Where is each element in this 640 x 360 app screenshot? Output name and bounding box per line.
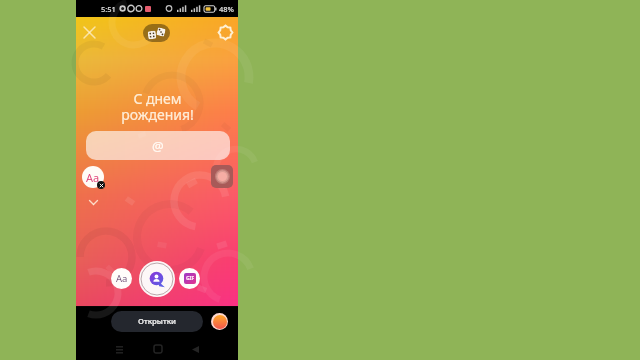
staticText: 5:51 (101, 4, 116, 14)
button[interactable]: Открытки (111, 311, 203, 332)
button[interactable]: Stickers (139, 261, 175, 297)
button[interactable]: Close (84, 27, 95, 38)
button[interactable]: Photo (211, 165, 233, 188)
button[interactable]: @ (86, 131, 230, 160)
button[interactable]: Shuffle template (143, 24, 170, 42)
button[interactable]: GIF (179, 268, 200, 289)
button[interactable]: Remove text (97, 181, 105, 189)
staticText: 48% (219, 4, 234, 14)
button[interactable]: Recents (111, 341, 127, 357)
staticText: GIF (186, 275, 195, 282)
staticText: Открытки (138, 316, 176, 327)
button[interactable]: Back (187, 341, 203, 357)
staticText: Aa (86, 170, 100, 185)
staticText: С днем рождения! (121, 89, 194, 124)
button[interactable]: Settings (218, 25, 233, 40)
button[interactable]: Profile (211, 313, 228, 330)
button[interactable]: Aa (111, 268, 132, 289)
staticText: @ (152, 137, 164, 155)
button[interactable]: Collapse (87, 197, 100, 208)
button[interactable]: Home (150, 341, 166, 357)
button[interactable]: Aa (82, 166, 104, 188)
staticText: Aa (116, 272, 128, 285)
